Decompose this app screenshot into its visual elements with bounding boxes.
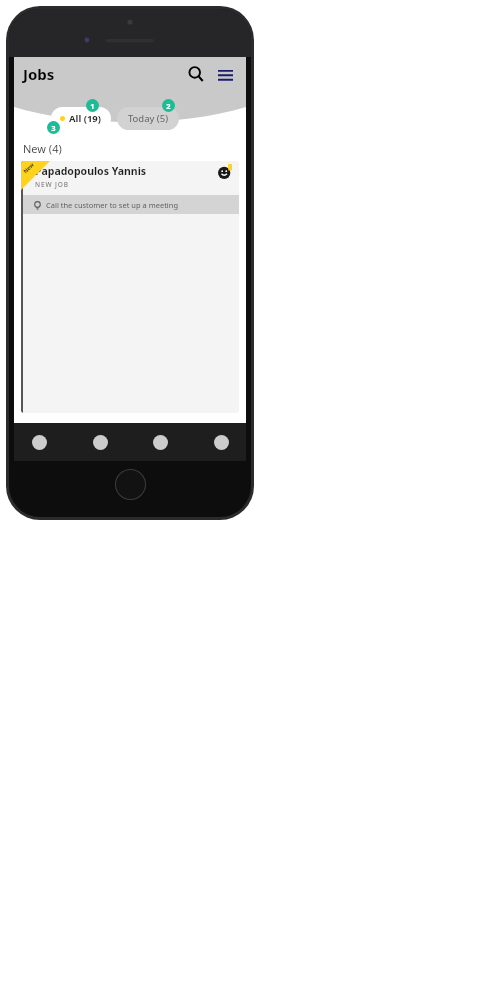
button[interactable]: Today (5) (117, 107, 179, 130)
button[interactable]: Search (184, 62, 208, 86)
staticText: Today (5) (128, 112, 168, 125)
staticText: New (21, 161, 35, 175)
button[interactable]: All (19) (51, 107, 111, 130)
staticText: 3 (51, 123, 56, 133)
button[interactable]: Customer status (217, 164, 233, 180)
button[interactable]: Profile (210, 431, 232, 453)
staticText: Papadopoulos Yannis (35, 164, 147, 178)
other: Home (116, 470, 145, 499)
staticText: NEW JOB (35, 180, 70, 189)
staticText: 1 (90, 101, 95, 111)
button[interactable]: Customers (149, 431, 171, 453)
button[interactable]: Jobs (28, 431, 50, 453)
button[interactable]: Schedule (89, 431, 111, 453)
staticText: All (19) (69, 112, 102, 125)
button[interactable]: Papadopoulos Yannis (21, 161, 239, 413)
staticText: Call the customer to set up a meeting (46, 200, 179, 210)
button[interactable]: Menu (213, 62, 237, 86)
staticText: New (4) (23, 141, 62, 156)
staticText: 2 (166, 101, 171, 111)
staticText: Jobs (23, 64, 55, 84)
